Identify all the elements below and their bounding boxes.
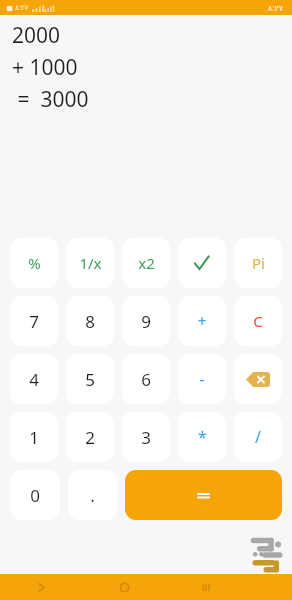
staticText: / xyxy=(255,426,261,448)
button[interactable]: Home xyxy=(83,574,165,600)
button[interactable]: C xyxy=(234,296,282,346)
staticText: 2 xyxy=(85,426,95,449)
staticText: 5 xyxy=(85,368,95,391)
button[interactable]: 7 xyxy=(10,296,58,346)
button[interactable]: Equals xyxy=(125,470,282,520)
staticText: % xyxy=(28,253,41,273)
staticText: ۸:۲۷ xyxy=(268,2,284,13)
button[interactable]: 1 xyxy=(10,412,58,462)
button[interactable]: + xyxy=(178,296,226,346)
staticText: 1/x xyxy=(79,253,102,273)
button[interactable]: Recents xyxy=(165,574,247,600)
staticText: 1 xyxy=(29,426,39,449)
staticText: Pi xyxy=(252,253,265,273)
staticText: = 3000 xyxy=(12,85,89,114)
button[interactable]: / xyxy=(234,412,282,462)
button[interactable]: 5 xyxy=(66,354,114,404)
staticText: 2000 xyxy=(12,21,61,50)
staticText: 8 xyxy=(85,310,95,333)
staticText: ۸:۲۷ xyxy=(15,3,29,13)
button[interactable]: . xyxy=(68,470,117,520)
staticText: . xyxy=(90,484,95,507)
button[interactable]: Square root xyxy=(178,238,226,288)
staticText: 9 xyxy=(141,310,151,333)
button[interactable]: Backspace xyxy=(234,354,282,404)
staticText: 6 xyxy=(141,368,151,391)
button[interactable]: 2 xyxy=(66,412,114,462)
button[interactable]: 6 xyxy=(122,354,170,404)
staticText: 3 xyxy=(141,426,151,449)
staticText: - xyxy=(199,368,205,390)
staticText: 4 xyxy=(29,368,39,391)
button[interactable]: 0 xyxy=(10,470,60,520)
button[interactable]: 9 xyxy=(122,296,170,346)
button[interactable]: 3 xyxy=(122,412,170,462)
button[interactable]: Pi xyxy=(234,238,282,288)
button[interactable]: % xyxy=(10,238,58,288)
staticText: * xyxy=(198,426,207,448)
staticText: + xyxy=(197,310,207,332)
staticText: 7 xyxy=(29,310,39,333)
button[interactable]: - xyxy=(178,354,226,404)
button[interactable]: Back xyxy=(0,574,83,600)
button[interactable]: 8 xyxy=(66,296,114,346)
button[interactable]: 1/x xyxy=(66,238,114,288)
staticText: x2 xyxy=(138,253,155,273)
staticText: + 1000 xyxy=(12,53,78,82)
button[interactable]: x2 xyxy=(122,238,170,288)
button[interactable]: 4 xyxy=(10,354,58,404)
staticText: 0 xyxy=(30,484,40,507)
staticText: C xyxy=(253,311,263,331)
button[interactable]: * xyxy=(178,412,226,462)
